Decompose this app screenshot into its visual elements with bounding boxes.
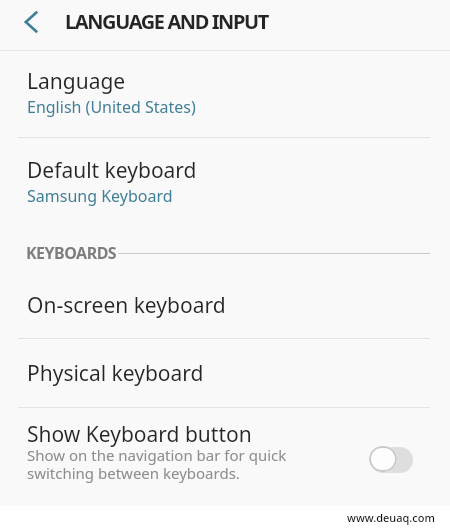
button[interactable]: On-screen keyboard [0,272,450,338]
button[interactable]: Show Keyboard button [0,408,450,498]
button[interactable]: Default keyboard [0,138,450,225]
staticText: Language [27,67,126,96]
button[interactable] [14,5,48,39]
staticText: Show Keyboard button [27,420,252,449]
button[interactable] [370,447,413,473]
staticText: Show on the navigation bar for quick swi… [27,445,287,484]
staticText: LANGUAGE AND INPUT [65,8,268,35]
staticText: Physical keyboard [27,359,204,388]
button[interactable]: Language [0,51,450,137]
staticText: English (United States) [27,96,196,118]
button[interactable]: Physical keyboard [0,339,450,407]
staticText: Default keyboard [27,156,197,185]
staticText: Samsung Keyboard [27,185,173,207]
staticText: On-screen keyboard [27,291,226,320]
staticText: KEYBOARDS [26,242,117,264]
staticText: www.deuaq.com [347,510,435,525]
